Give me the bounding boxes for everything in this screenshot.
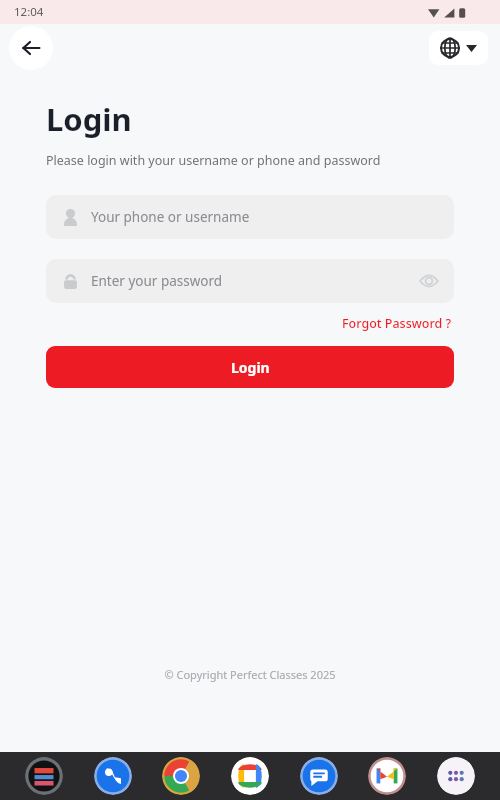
button[interactable]: All apps	[437, 757, 475, 795]
button[interactable]: Change language	[429, 31, 488, 65]
button[interactable]: Chrome	[162, 757, 200, 795]
button[interactable]: Gmail	[368, 757, 406, 795]
staticText: © Copyright Perfect Classes 2025	[164, 667, 336, 682]
button[interactable]: Phone	[94, 757, 132, 795]
button[interactable]: Gallery	[25, 757, 63, 795]
button[interactable]: Messages	[300, 757, 338, 795]
button[interactable]: Forgot Password ?	[340, 313, 454, 334]
staticText: Forgot Password ?	[342, 315, 452, 332]
staticText: Enter your password	[91, 272, 420, 290]
button[interactable]: Login	[46, 346, 454, 388]
button[interactable]: Enter your password	[46, 259, 454, 303]
staticText: Please login with your username or phone…	[46, 152, 381, 169]
staticText: Your phone or username	[91, 208, 438, 226]
staticText: Login	[46, 98, 132, 140]
button[interactable]: Back	[9, 26, 53, 70]
button[interactable]: Your phone or username	[46, 195, 454, 239]
button[interactable]: Photos	[231, 757, 269, 795]
staticText: 12:04	[14, 4, 44, 20]
button[interactable]: Show password	[420, 272, 438, 290]
staticText: Login	[231, 358, 270, 377]
